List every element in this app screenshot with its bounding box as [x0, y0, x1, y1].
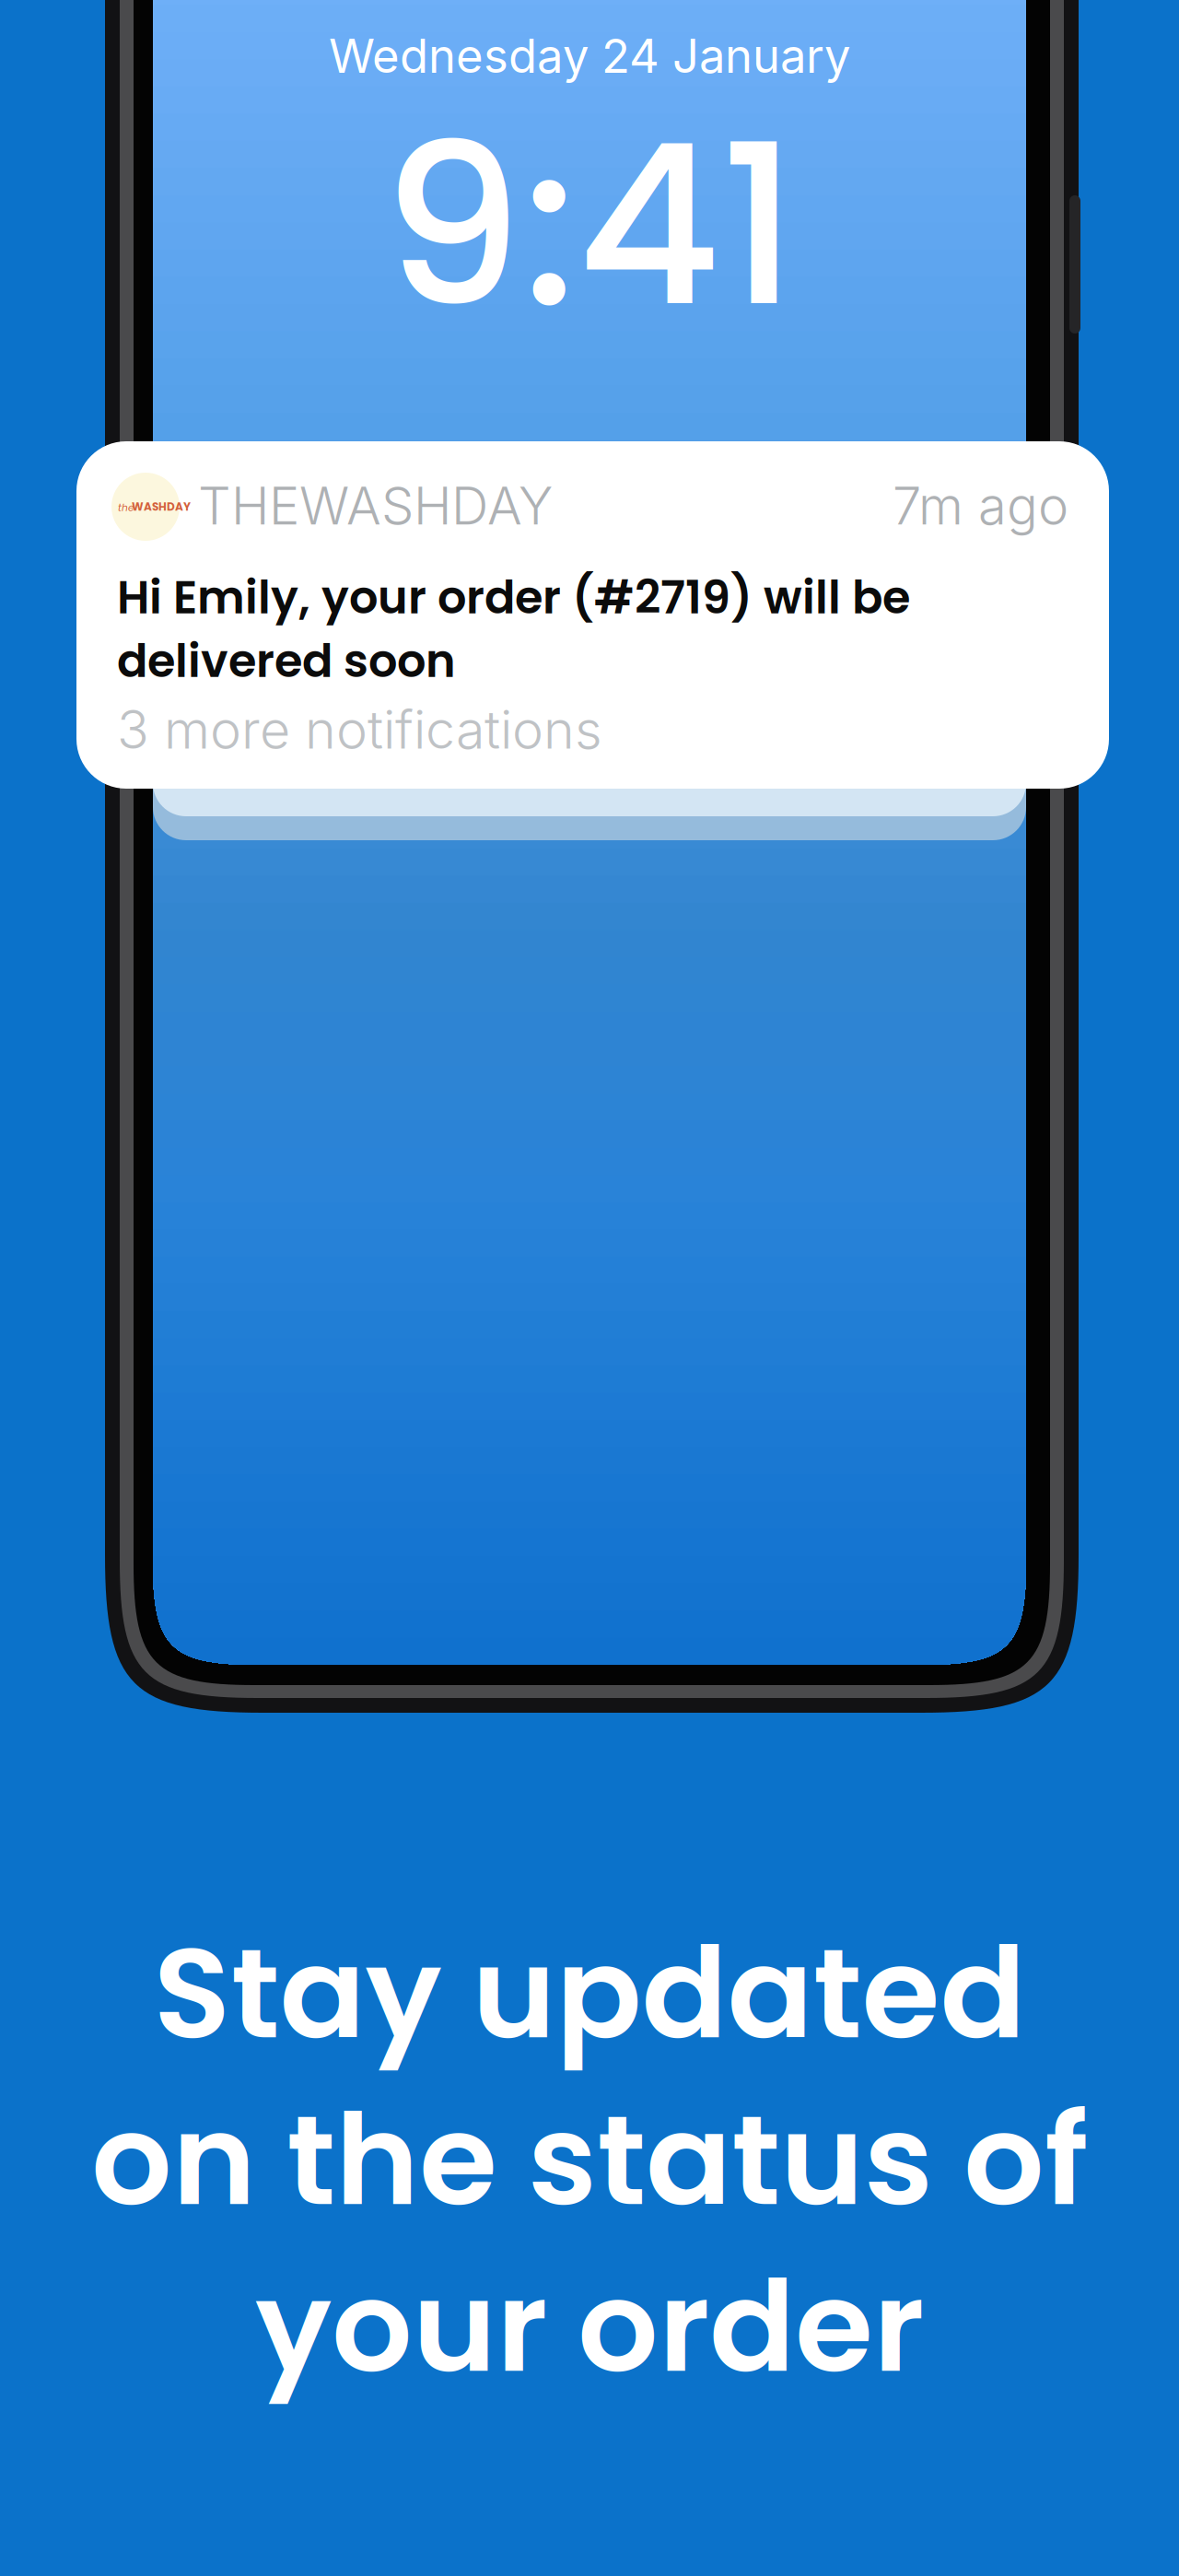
staticText: WASHDAY — [132, 499, 191, 514]
button[interactable]: the — [76, 441, 1109, 789]
staticText: THEWASHDAY — [198, 474, 553, 537]
staticText: your order — [255, 2238, 924, 2415]
staticText: 9:41 — [381, 70, 798, 381]
staticText: on the status of — [91, 2071, 1088, 2248]
staticText: the — [118, 501, 134, 514]
staticText: Stay updated — [153, 1904, 1026, 2082]
staticText: 3 more notifications — [117, 697, 602, 761]
staticText: 7m ago — [893, 474, 1068, 537]
staticText: Wednesday 24 January — [329, 28, 850, 84]
staticText: Hi Emily, your order (#2719) will be del… — [117, 566, 910, 693]
